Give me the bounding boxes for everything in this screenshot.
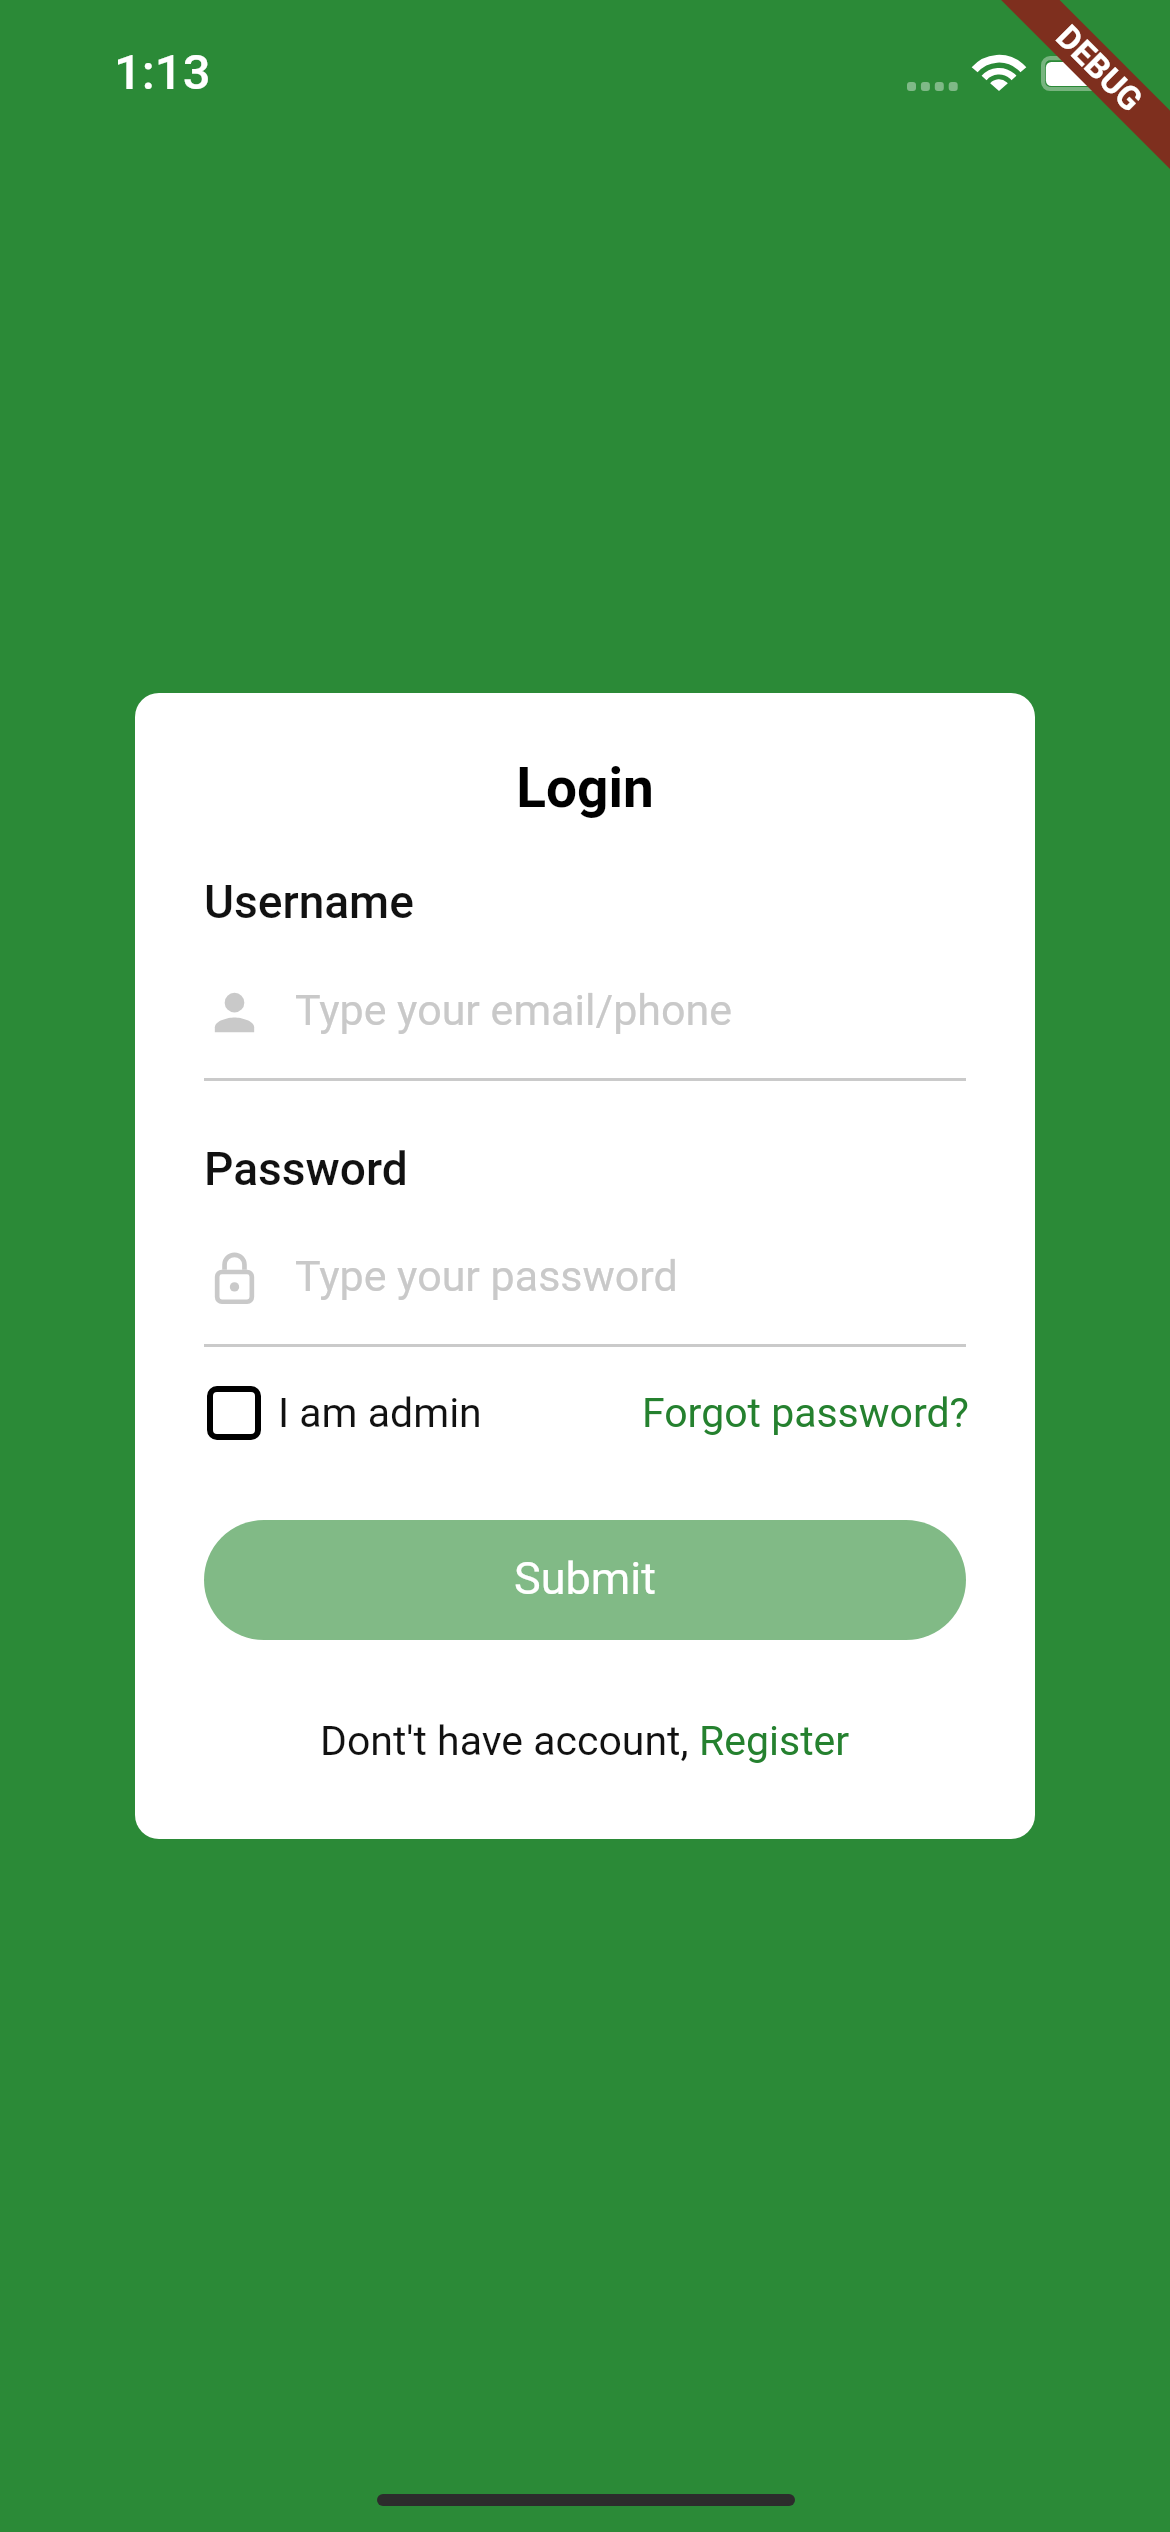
other: Wi-Fi bbox=[967, 50, 1031, 94]
other: Cellular signal bbox=[907, 82, 959, 91]
staticText: Submit bbox=[514, 1552, 656, 1605]
button[interactable]: Forgot password? bbox=[642, 1373, 969, 1453]
staticText: Type your email/phone bbox=[295, 985, 733, 1035]
staticText: Forgot password? bbox=[642, 1389, 969, 1437]
staticText: Username bbox=[204, 875, 414, 929]
button[interactable]: I am admin bbox=[201, 1373, 482, 1453]
staticText: 1:13 bbox=[114, 44, 211, 101]
staticText: Register bbox=[699, 1717, 850, 1765]
button[interactable]: Register bbox=[699, 1717, 850, 1765]
button[interactable]: Submit bbox=[204, 1520, 966, 1640]
staticText: Dont't have account, bbox=[320, 1717, 699, 1765]
staticText: Password bbox=[204, 1142, 408, 1196]
staticText: I am admin bbox=[278, 1389, 482, 1437]
other: Battery bbox=[1039, 52, 1115, 92]
staticText: DEBUG bbox=[1048, 17, 1151, 120]
staticText: Login bbox=[135, 756, 1035, 820]
staticText: Type your password bbox=[295, 1251, 678, 1301]
